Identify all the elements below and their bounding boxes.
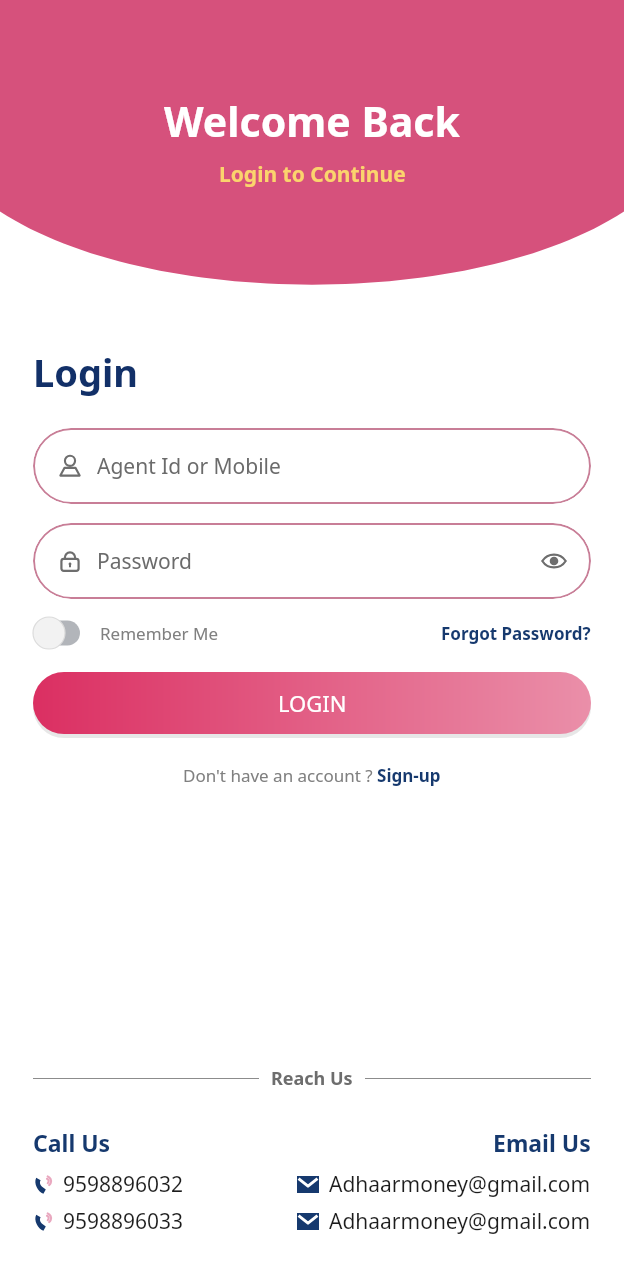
button[interactable]: Password: [33, 523, 591, 599]
staticText: Welcome Back: [164, 93, 460, 149]
staticText: Forgot Password?: [441, 622, 591, 645]
staticText: Reach Us: [271, 1066, 353, 1091]
button[interactable]: Remember Me: [33, 612, 219, 654]
staticText: LOGIN: [278, 688, 347, 718]
button[interactable]: Forgot Password?: [441, 617, 591, 650]
staticText: Don't have an account ? Sign-up: [183, 764, 441, 787]
staticText: Adhaarmoney@gmail.com: [329, 1207, 591, 1236]
staticText: Login: [33, 346, 139, 398]
staticText: Remember Me: [100, 622, 219, 645]
staticText: Agent Id or Mobile: [97, 452, 281, 481]
button[interactable]: LOGIN: [33, 672, 591, 734]
staticText: Email Us: [493, 1127, 591, 1158]
button[interactable]: 9598896033: [33, 1207, 184, 1236]
staticText: 9598896032: [63, 1170, 184, 1199]
button[interactable]: Adhaarmoney@gmail.com: [297, 1170, 591, 1199]
staticText: Call Us: [33, 1127, 111, 1158]
staticText: Adhaarmoney@gmail.com: [329, 1170, 591, 1199]
button[interactable]: Agent Id or Mobile: [33, 428, 591, 504]
button[interactable]: Show password: [541, 548, 567, 574]
staticText: Login to Continue: [219, 160, 406, 189]
staticText: Password: [97, 547, 192, 576]
button[interactable]: Don't have an account ? Sign-up: [179, 760, 445, 791]
button[interactable]: Adhaarmoney@gmail.com: [297, 1207, 591, 1236]
button[interactable]: 9598896032: [33, 1170, 184, 1199]
staticText: 9598896033: [63, 1207, 184, 1236]
other: Show password: [541, 548, 567, 574]
